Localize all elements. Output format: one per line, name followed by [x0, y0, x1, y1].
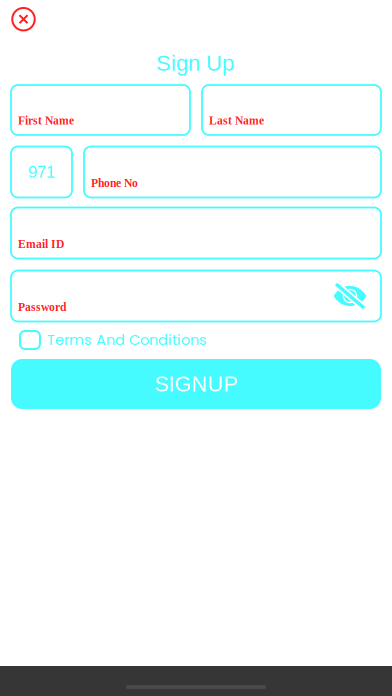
staticText: Terms And Conditions [47, 330, 207, 350]
staticText: Email ID [18, 238, 64, 250]
button[interactable]: Show password [328, 274, 372, 318]
staticText: First Name [18, 114, 74, 127]
staticText: Phone No [91, 177, 138, 189]
staticText: Sign Up [156, 51, 234, 75]
staticText: SIGNUP [154, 372, 237, 396]
staticText: Password [18, 301, 66, 313]
button[interactable]: SIGNUP [11, 359, 381, 409]
button[interactable]: Terms And Conditions [20, 323, 252, 357]
staticText: Last Name [209, 114, 264, 127]
staticText: 971 [28, 163, 55, 181]
button[interactable]: Close [1, 0, 45, 41]
